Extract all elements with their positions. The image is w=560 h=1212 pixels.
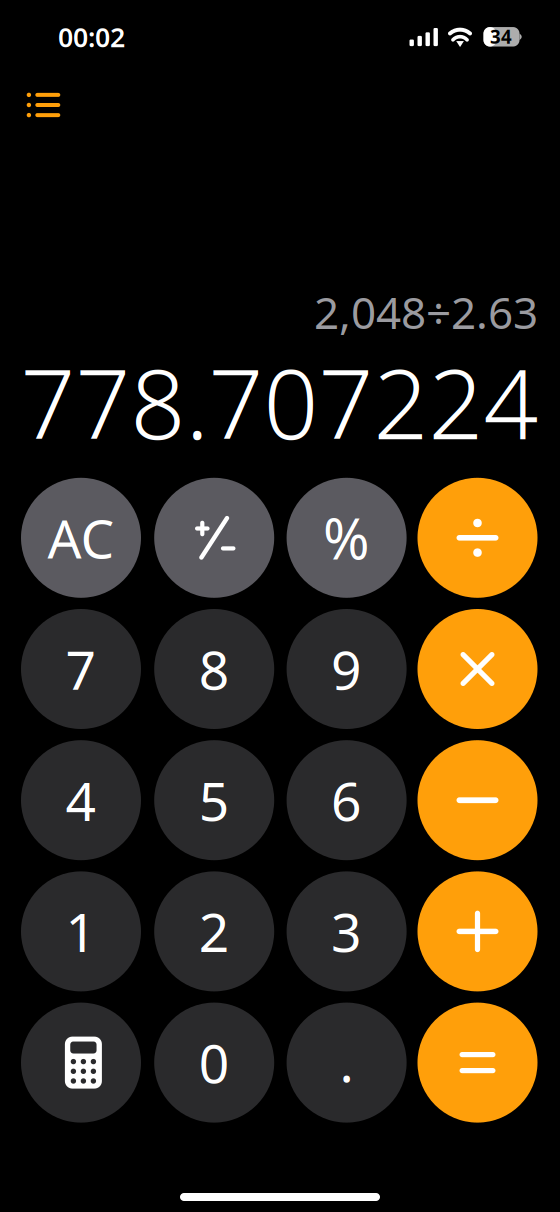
button[interactable]: 7 [21, 609, 141, 729]
staticText: % [323, 501, 370, 575]
staticText: 8 [199, 634, 230, 704]
button[interactable]: Equals [417, 1003, 537, 1123]
button[interactable]: 1 [21, 871, 141, 991]
button[interactable]: Plus minus [154, 478, 274, 598]
staticText: 6 [331, 765, 362, 836]
button[interactable]: 8 [154, 609, 274, 729]
staticText: . [340, 1026, 354, 1097]
button[interactable]: Minus [417, 740, 537, 860]
button[interactable]: 6 [287, 740, 407, 860]
staticText: 1 [65, 896, 96, 967]
staticText: 34 [490, 24, 512, 49]
button[interactable]: Multiply [417, 609, 537, 729]
button[interactable]: History [15, 81, 71, 129]
staticText: 2 [199, 896, 230, 967]
button[interactable]: Plus [417, 871, 537, 991]
staticText: 778.707224 [20, 338, 538, 466]
button[interactable]: % [287, 478, 407, 598]
staticText: 00:02 [58, 19, 125, 55]
staticText: AC [47, 502, 114, 573]
button[interactable]: Divide [417, 478, 537, 598]
button[interactable]: AC [21, 478, 141, 598]
button[interactable]: 3 [287, 871, 407, 991]
staticText: 5 [199, 765, 230, 836]
staticText: 3 [331, 896, 362, 967]
button[interactable]: . [287, 1003, 407, 1123]
button[interactable]: 9 [287, 609, 407, 729]
staticText: 0 [199, 1027, 230, 1098]
button[interactable]: 0 [154, 1003, 274, 1123]
staticText: 7 [65, 634, 96, 704]
staticText: 2,048÷2.63 [314, 283, 538, 341]
button[interactable]: 2 [154, 871, 274, 991]
button[interactable]: Calculator [21, 1003, 141, 1123]
button[interactable]: 5 [154, 740, 274, 860]
button[interactable]: 4 [21, 740, 141, 860]
staticText: 4 [65, 765, 96, 836]
staticText: 9 [331, 634, 362, 704]
